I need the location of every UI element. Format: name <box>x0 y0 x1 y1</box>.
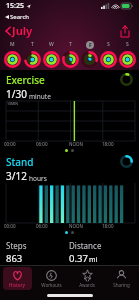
button[interactable]: Activity T <box>61 49 80 69</box>
staticText: hours <box>29 174 47 183</box>
button[interactable]: Activity T <box>22 49 42 69</box>
button[interactable]: Activity F <box>80 49 99 69</box>
staticText: 1/30 <box>6 87 27 101</box>
staticText: Sharing <box>113 282 130 288</box>
button[interactable]: History <box>0 266 34 291</box>
staticText: July <box>12 23 33 38</box>
staticText: Steps <box>6 240 27 251</box>
staticText: Workouts <box>41 282 62 288</box>
staticText: NOON <box>69 223 83 229</box>
staticText: 0.37 <box>69 252 88 265</box>
staticText: Search <box>10 13 29 21</box>
staticText: 18:00 <box>102 141 114 147</box>
button[interactable]: Exercise <box>0 71 139 154</box>
button[interactable]: Activity M <box>2 49 22 69</box>
staticText: Distance <box>69 240 102 251</box>
staticText: 15:25 <box>6 1 24 11</box>
button[interactable]: Stand <box>0 154 139 236</box>
staticText: F <box>89 42 92 49</box>
staticText: mi <box>89 255 98 265</box>
button[interactable]: Activity W <box>42 49 61 69</box>
staticText: 00:00 <box>4 141 16 147</box>
button[interactable]: Workouts <box>34 266 69 291</box>
staticText: T <box>69 41 72 48</box>
staticText: W <box>49 41 54 48</box>
button[interactable]: July <box>5 23 36 38</box>
staticText: M <box>10 41 15 48</box>
button[interactable]: Sharing <box>104 266 139 291</box>
button[interactable]: Activity S <box>99 49 118 69</box>
button[interactable]: Share <box>116 22 134 40</box>
staticText: S <box>107 41 110 48</box>
staticText: S <box>126 41 129 48</box>
staticText: History <box>9 282 25 288</box>
button[interactable]: Distance <box>69 240 133 265</box>
staticText: Exercise <box>6 73 45 87</box>
staticText: minute <box>29 92 51 101</box>
staticText: T <box>31 41 34 48</box>
button[interactable]: Steps <box>6 240 69 265</box>
staticText: Awards <box>79 282 95 288</box>
staticText: 18:00 <box>102 223 114 229</box>
staticText: 3/12 <box>6 169 27 183</box>
staticText: 06:00 <box>36 141 48 147</box>
staticText: Stand <box>6 155 34 169</box>
staticText: 863 <box>6 252 23 265</box>
staticText: NOON <box>69 141 83 147</box>
button[interactable]: Activity S <box>118 49 137 69</box>
staticText: 06:00 <box>36 223 48 229</box>
staticText: 10MIN <box>7 101 19 106</box>
staticText: 00:00 <box>4 223 16 229</box>
button[interactable]: Awards <box>69 266 104 291</box>
